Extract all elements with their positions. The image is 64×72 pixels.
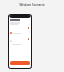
button[interactable]: Start — [10, 61, 30, 65]
staticText: Wisdom Scenario — [19, 3, 45, 7]
